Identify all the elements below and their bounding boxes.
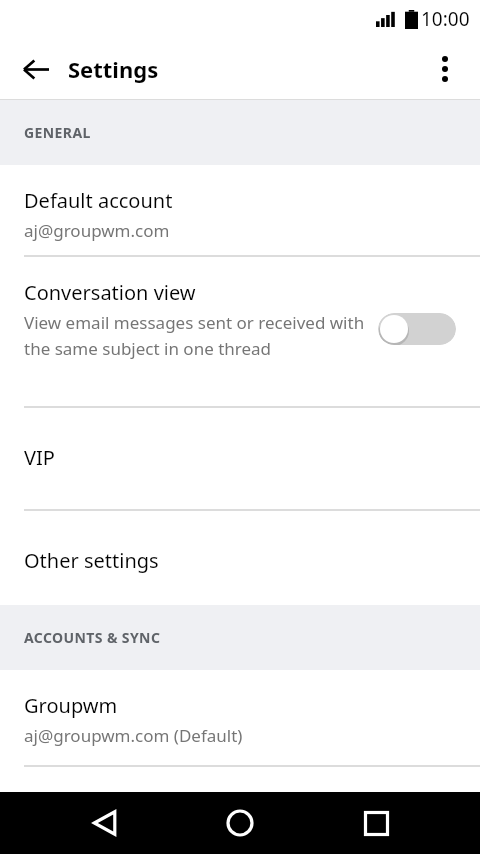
button[interactable]: More options (419, 43, 471, 95)
staticText: ACCOUNTS & SYNC (24, 628, 161, 647)
button[interactable]: Conversation view toggle (378, 313, 456, 345)
button[interactable]: Recent apps (345, 792, 407, 854)
button[interactable]: Back (10, 43, 62, 95)
button[interactable]: Home (209, 792, 271, 854)
button[interactable]: Back (74, 792, 136, 854)
button[interactable]: VIP (0, 408, 480, 509)
staticText: aj@groupwm.com (Default) (24, 724, 243, 747)
staticText: GENERAL (24, 123, 91, 142)
staticText: Conversation view (24, 279, 196, 306)
staticText: Groupwm (24, 692, 118, 719)
button[interactable]: Default account (0, 165, 480, 255)
staticText: Default account (24, 187, 173, 214)
staticText: aj@groupwm.com (24, 219, 170, 242)
staticText: 10:00 (421, 6, 470, 32)
staticText: Settings (68, 54, 159, 84)
button[interactable]: Other settings (0, 511, 480, 605)
staticText: Other settings (24, 547, 159, 574)
button[interactable]: Conversation view (0, 257, 480, 406)
staticText: View email messages sent or received wit… (24, 311, 366, 360)
button[interactable]: Groupwm (0, 670, 480, 765)
staticText: VIP (24, 444, 55, 471)
